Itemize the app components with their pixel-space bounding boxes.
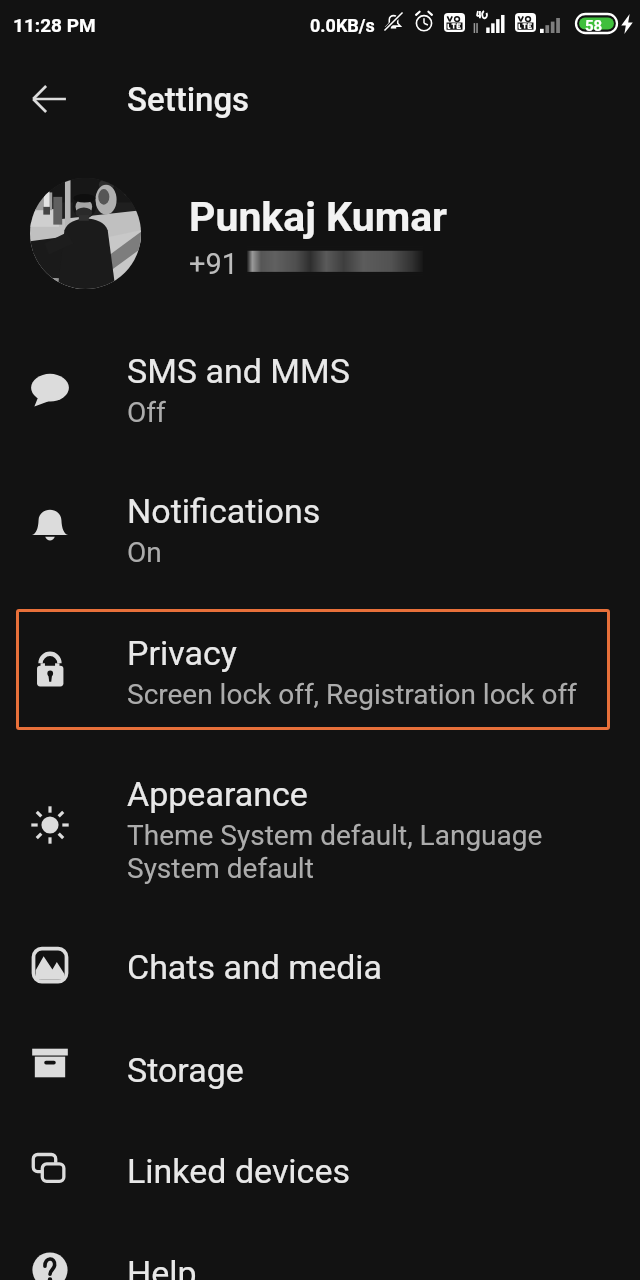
staticText: +91 <box>189 247 239 281</box>
staticText: 11:28 PM <box>13 14 96 36</box>
staticText: On <box>127 536 162 569</box>
button[interactable]: Back <box>14 64 84 134</box>
staticText: Off <box>127 396 166 429</box>
button[interactable]: Punkaj Kumar <box>0 158 640 308</box>
staticText: Theme System default, Language System de… <box>127 819 543 885</box>
staticText: 0.0KB/s <box>310 15 375 36</box>
staticText: Privacy <box>127 633 237 673</box>
staticText: SMS and MMS <box>127 351 350 391</box>
button[interactable]: Help <box>0 1220 640 1280</box>
staticText: Storage <box>127 1050 244 1090</box>
button[interactable]: Notifications <box>0 473 640 573</box>
button[interactable]: Appearance <box>0 766 640 887</box>
staticText: Appearance <box>127 774 308 814</box>
staticText: Screen lock off, Registration lock off <box>127 678 577 711</box>
button[interactable]: SMS and MMS <box>0 339 640 439</box>
staticText: Notifications <box>127 491 321 531</box>
staticText: Chats and media <box>127 947 383 987</box>
button[interactable]: Linked devices <box>0 1119 640 1219</box>
staticText: Settings <box>127 80 250 119</box>
staticText: Punkaj Kumar <box>189 193 448 241</box>
button[interactable]: Chats and media <box>0 915 640 1015</box>
button[interactable]: Storage <box>0 1013 640 1113</box>
button[interactable]: Privacy <box>16 609 610 730</box>
staticText: Help <box>127 1253 197 1280</box>
staticText: 58 <box>585 17 603 35</box>
staticText: Linked devices <box>127 1151 350 1191</box>
